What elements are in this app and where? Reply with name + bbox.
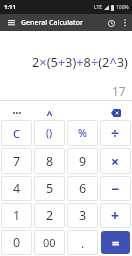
button[interactable]: . (67, 230, 98, 255)
staticText: 3 (79, 207, 87, 224)
staticText: 17 (112, 83, 126, 99)
button[interactable]: () (34, 120, 65, 146)
button[interactable] (120, 17, 129, 29)
staticText: 00 (43, 235, 56, 250)
staticText: 9 (79, 153, 87, 170)
button[interactable]: C (1, 120, 32, 146)
button[interactable]: ÷ (100, 120, 131, 146)
button[interactable]: 6 (67, 176, 98, 201)
button[interactable]: 7 (1, 148, 32, 174)
button[interactable]: 8 (34, 148, 65, 174)
staticText: 0 (13, 234, 21, 251)
staticText: 2×(5+3)+8÷(2^3) (32, 53, 128, 70)
staticText: 4 (13, 180, 21, 197)
button[interactable]: + (100, 203, 131, 228)
button[interactable]: 2 (34, 203, 65, 228)
staticText: 1:11 (4, 3, 16, 11)
button[interactable]: − (100, 176, 131, 201)
button[interactable]: 00 (34, 230, 65, 255)
staticText: () (46, 126, 53, 140)
staticText: LTE (94, 4, 103, 11)
button[interactable] (0, 101, 33, 119)
staticText: 8 (46, 153, 54, 170)
staticText: + (111, 206, 120, 225)
button[interactable] (99, 101, 132, 119)
button[interactable] (33, 101, 66, 119)
staticText: × (111, 152, 120, 171)
button[interactable] (5, 17, 17, 29)
staticText: 1 (13, 207, 21, 224)
button[interactable] (105, 17, 117, 29)
button[interactable]: 1 (1, 203, 32, 228)
staticText: % (78, 126, 87, 140)
button[interactable]: 4 (1, 176, 32, 201)
button[interactable]: = (101, 231, 130, 254)
button[interactable]: % (67, 120, 98, 146)
button[interactable]: 5 (34, 176, 65, 201)
button[interactable]: 9 (67, 148, 98, 174)
staticText: C (13, 126, 20, 141)
staticText: = (112, 234, 120, 252)
staticText: 6 (79, 180, 87, 197)
staticText: − (111, 179, 120, 198)
staticText: 7 (13, 153, 21, 170)
staticText: . (81, 235, 85, 251)
button[interactable]: 3 (67, 203, 98, 228)
staticText: 100% (116, 4, 129, 11)
button[interactable]: 0 (1, 230, 32, 255)
staticText: General Calculator (21, 18, 84, 28)
staticText: ÷ (111, 124, 120, 143)
staticText: 5 (46, 180, 54, 197)
staticText: 2 (46, 207, 54, 224)
button[interactable]: × (100, 148, 131, 174)
